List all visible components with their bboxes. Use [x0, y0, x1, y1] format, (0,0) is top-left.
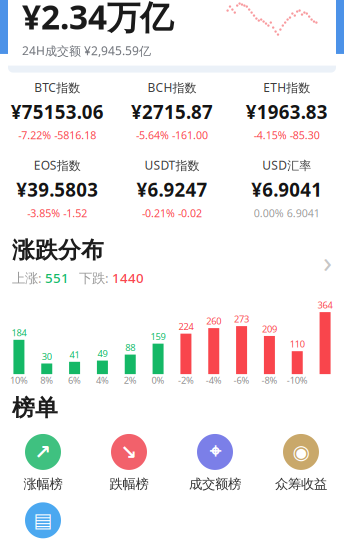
staticText: -2%	[178, 374, 194, 386]
staticText: ¥2.34万亿	[22, 0, 173, 39]
staticText: 110	[290, 338, 305, 350]
staticText: 49	[97, 347, 107, 360]
staticText: 1440	[112, 269, 144, 287]
staticText: ›	[323, 242, 332, 281]
staticText: USDT指数	[144, 157, 199, 173]
button[interactable]: 涨幅榜	[0, 434, 86, 492]
staticText: -10%	[287, 374, 308, 386]
staticText: -6%	[234, 374, 250, 386]
staticText: ¥6.9041	[251, 177, 322, 202]
staticText: 10%	[10, 374, 28, 386]
button[interactable]: 众筹收益	[258, 434, 344, 492]
staticText: -4.15% -85.30	[254, 128, 320, 142]
staticText: 551	[45, 269, 69, 287]
staticText: 成交额榜	[189, 476, 241, 492]
staticText: 4%	[96, 374, 109, 386]
staticText: -0.21% -0.02	[142, 206, 202, 220]
staticText: ◉	[292, 441, 309, 463]
staticText: ¥1963.83	[246, 99, 328, 124]
staticText: -5.64% -161.00	[136, 128, 208, 142]
staticText: 6%	[68, 374, 81, 386]
staticText: ¥2715.87	[131, 99, 213, 124]
staticText: ¥75153.06	[11, 99, 104, 124]
staticText: ETH指数	[263, 79, 310, 95]
staticText: -3.85% -1.52	[27, 206, 87, 220]
staticText: 364	[318, 299, 333, 311]
staticText: 24H成交额 ¥2,945.59亿	[22, 43, 151, 59]
staticText: 159	[151, 330, 166, 343]
button[interactable]: BTC指数	[0, 79, 115, 142]
staticText: 41	[70, 348, 80, 361]
staticText: 2%	[124, 374, 137, 386]
button[interactable]: 涨跌分布	[0, 236, 344, 287]
staticText: 8%	[40, 374, 53, 386]
staticText: 0.00% 6.9041	[254, 206, 320, 220]
button[interactable]: BCH指数	[115, 79, 229, 142]
button[interactable]: 跌幅榜	[86, 434, 172, 492]
staticText: 88	[125, 341, 135, 354]
staticText: -4%	[206, 374, 222, 386]
button[interactable]: USDT指数	[115, 157, 229, 220]
button[interactable]: ETH指数	[229, 79, 344, 142]
staticText: ▤	[33, 509, 52, 532]
staticText: 上涨:	[12, 269, 45, 287]
staticText: BCH指数	[147, 79, 196, 95]
button[interactable]: EOS指数	[0, 157, 115, 220]
staticText: 224	[178, 320, 193, 333]
staticText: ↘	[120, 441, 137, 463]
staticText: ↗	[34, 441, 51, 463]
staticText: ¥6.9247	[136, 177, 207, 202]
staticText: 涨幅榜	[23, 476, 62, 492]
staticText: 0%	[152, 374, 165, 386]
staticText: 209	[262, 323, 277, 335]
staticText: -8%	[261, 374, 277, 386]
staticText: 下跌:	[79, 269, 112, 287]
staticText: USD汇率	[262, 157, 311, 173]
button[interactable]: USD汇率	[229, 157, 344, 220]
staticText: 184	[11, 326, 26, 339]
staticText: 260	[206, 315, 221, 327]
staticText: ⌖	[209, 442, 220, 462]
staticText: -7.22% -5816.18	[18, 128, 96, 142]
staticText: 30	[42, 350, 52, 362]
staticText: 273	[234, 313, 249, 325]
staticText: EOS指数	[34, 157, 81, 173]
staticText: BTC指数	[34, 79, 80, 95]
button[interactable]: 成交额榜	[172, 434, 258, 492]
staticText: 涨跌分布	[12, 236, 104, 264]
staticText: 众筹收益	[275, 476, 327, 492]
staticText: 跌幅榜	[109, 476, 148, 492]
button[interactable]: 卡券	[0, 502, 86, 550]
staticText: ¥39.5803	[16, 177, 98, 202]
staticText: 榜单	[12, 394, 58, 422]
